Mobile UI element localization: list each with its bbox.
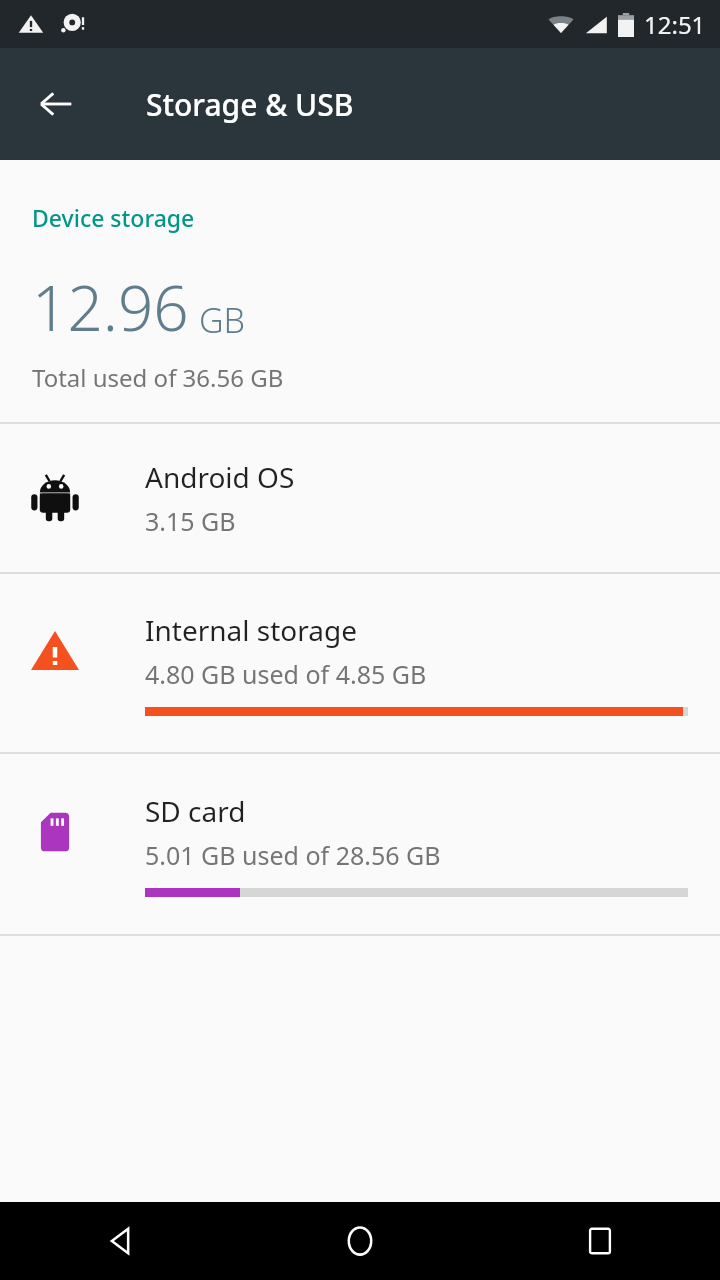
- staticText: 4.80 GB used of 4.85 GB: [145, 657, 427, 691]
- staticText: 12:51: [644, 8, 706, 41]
- staticText: Device storage: [32, 202, 195, 233]
- staticText: GB: [199, 297, 246, 343]
- staticText: 3.15 GB: [145, 504, 236, 538]
- button[interactable]: SD card: [0, 754, 720, 934]
- button[interactable]: Home: [240, 1202, 480, 1280]
- staticText: Storage & USB: [146, 84, 354, 125]
- staticText: Total used of 36.56 GB: [32, 361, 284, 394]
- button[interactable]: Internal storage: [0, 574, 720, 752]
- staticText: Internal storage: [145, 611, 357, 649]
- staticText: 12.96: [32, 265, 189, 349]
- staticText: SD card: [145, 792, 246, 830]
- staticText: 5.01 GB used of 28.56 GB: [145, 838, 441, 872]
- staticText: Android OS: [145, 458, 295, 496]
- button[interactable]: Back: [22, 70, 90, 138]
- button[interactable]: Back: [0, 1202, 240, 1280]
- button[interactable]: Android OS: [0, 424, 720, 572]
- button[interactable]: Recents: [480, 1202, 720, 1280]
